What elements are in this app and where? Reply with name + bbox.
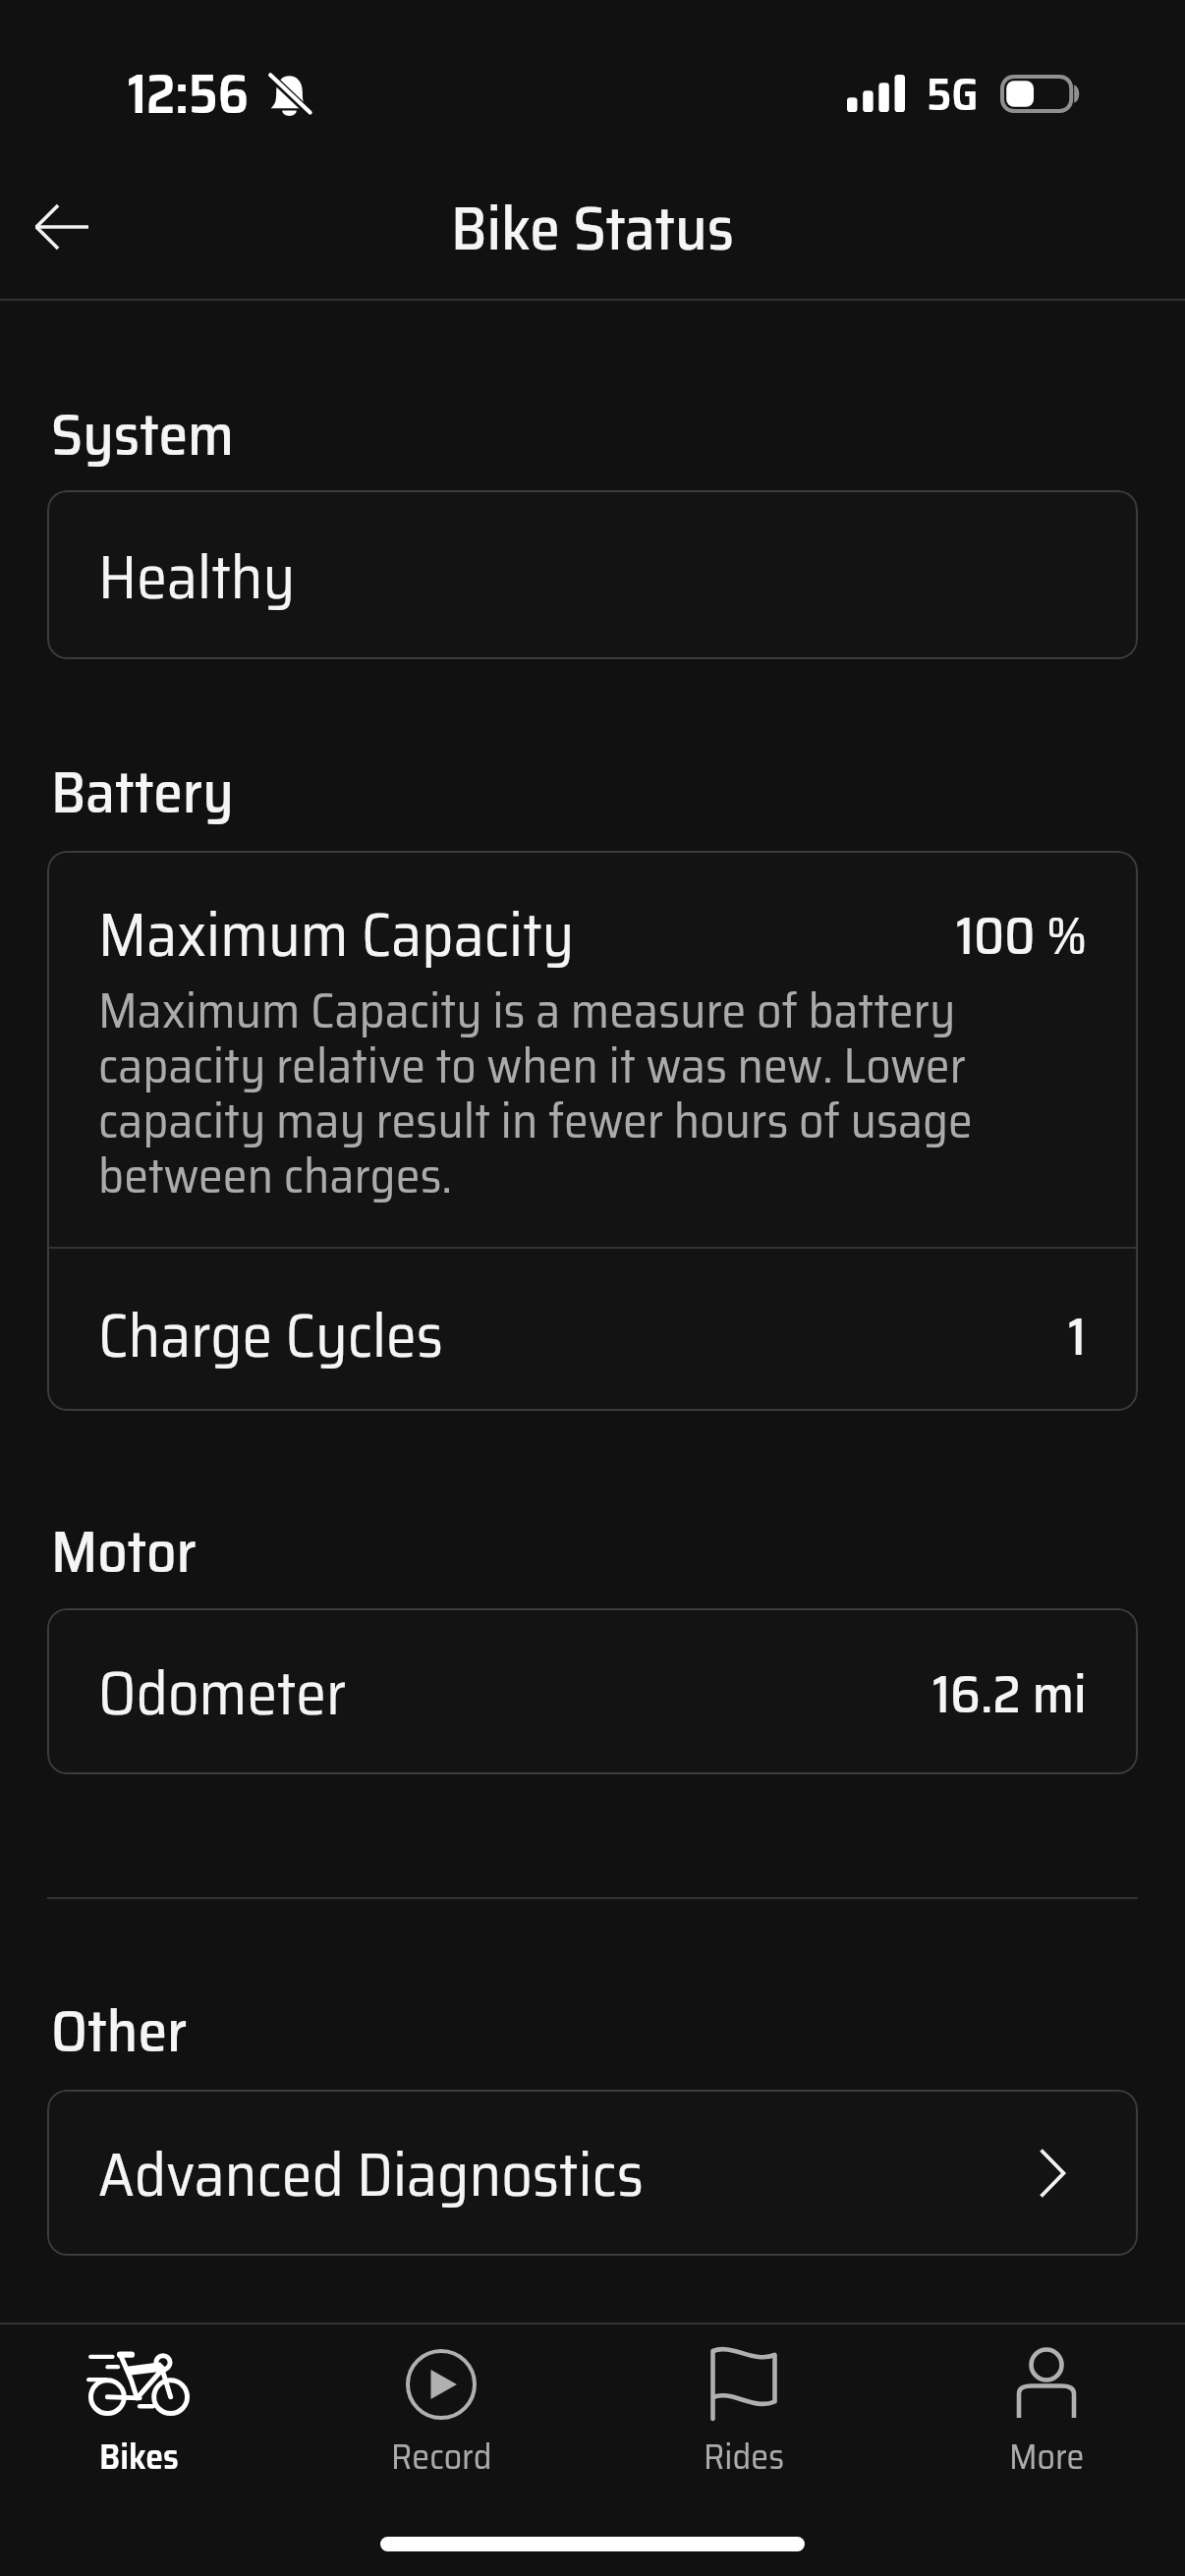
staticText: Advanced Diagnostics — [98, 2144, 645, 2215]
staticText: Maximum Capacity — [98, 904, 575, 976]
staticText: 100 % — [956, 909, 1087, 972]
staticText: Odometer — [98, 1662, 347, 1734]
button[interactable]: Record — [290, 2324, 592, 2480]
staticText: Motor — [51, 1522, 197, 1592]
staticText: 5G — [927, 71, 979, 125]
button[interactable]: Bikes — [0, 2324, 290, 2480]
button[interactable]: Advanced Diagnostics — [47, 2090, 1138, 2256]
staticText: System — [51, 405, 235, 475]
staticText: Healthy — [98, 546, 296, 618]
button[interactable]: Back — [9, 174, 115, 280]
staticText: Record — [391, 2438, 492, 2480]
staticText: Rides — [704, 2438, 784, 2480]
button[interactable]: More — [895, 2324, 1185, 2480]
staticText: Battery — [51, 762, 234, 832]
staticText: 16.2 mi — [932, 1667, 1087, 1730]
button[interactable]: Rides — [592, 2324, 895, 2480]
staticText: 12:56 — [128, 67, 250, 131]
staticText: Bike Status — [451, 197, 734, 269]
staticText: Bikes — [99, 2438, 179, 2480]
staticText: More — [1009, 2438, 1085, 2480]
staticText: 1 — [1068, 1310, 1087, 1372]
staticText: Other — [51, 2001, 188, 2071]
staticText: Maximum Capacity is a measure of battery… — [98, 988, 1087, 1208]
staticText: Charge Cycles — [98, 1305, 443, 1376]
